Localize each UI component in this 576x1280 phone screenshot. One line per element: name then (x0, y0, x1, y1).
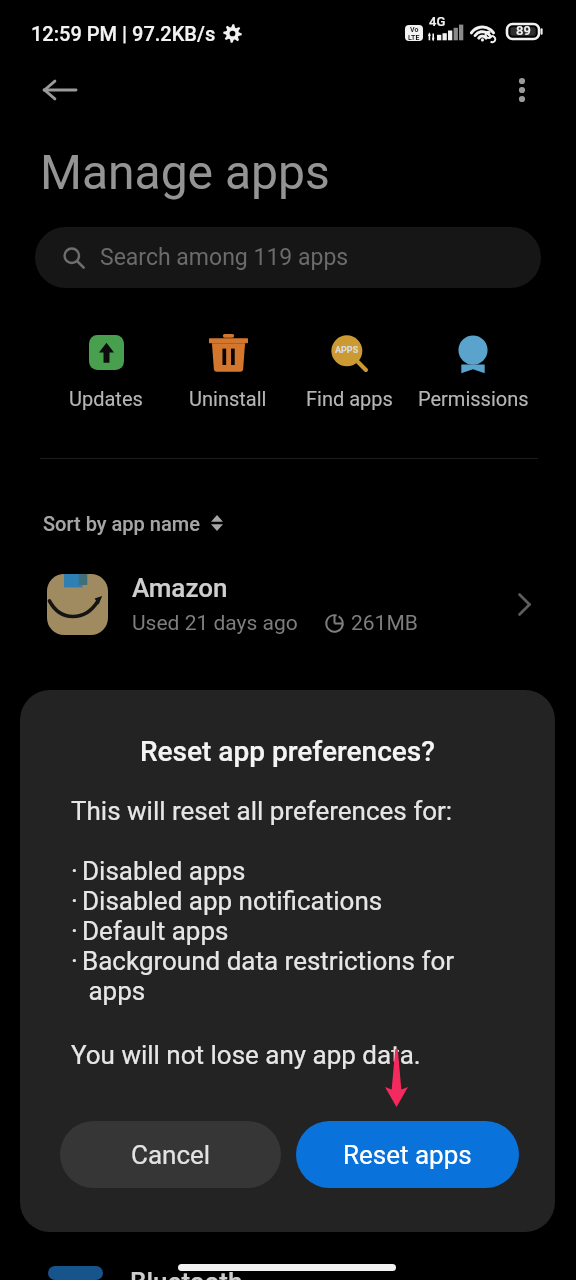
staticText: Sort by app name (43, 512, 200, 535)
staticText: 4G (429, 14, 446, 29)
staticText: Background data restrictions for apps (82, 946, 455, 1006)
staticText: Used 21 days ago (132, 611, 298, 636)
staticText: Reset app preferences? (140, 735, 435, 768)
button[interactable]: Cancel (60, 1121, 281, 1188)
staticText: Updates (69, 387, 143, 410)
button[interactable]: Search (35, 227, 541, 288)
button[interactable]: Amazon (0, 560, 576, 648)
staticText: Disabled app notifications (82, 886, 383, 916)
button[interactable]: Updates (45, 329, 167, 414)
staticText: Amazon (132, 573, 228, 603)
button[interactable]: Sort by app name (0, 498, 576, 548)
staticText: · (71, 916, 78, 946)
button[interactable]: Bluetooth (0, 1266, 576, 1280)
staticText: Reset apps (343, 1140, 472, 1170)
staticText: You will not lose any app data. (71, 1040, 421, 1070)
button[interactable]: More options (498, 66, 546, 114)
staticText: 89 (516, 23, 531, 38)
button[interactable]: Permissions (412, 329, 534, 414)
staticText: LTE (408, 34, 420, 41)
staticText: This will reset all preferences for: (71, 796, 453, 826)
button[interactable]: Uninstall (167, 329, 289, 414)
button[interactable]: Reset apps (296, 1121, 519, 1188)
staticText: Uninstall (189, 387, 267, 410)
staticText: APPS (335, 345, 359, 356)
button[interactable]: Back (33, 63, 87, 117)
staticText: Cancel (131, 1140, 211, 1170)
staticText: Disabled apps (82, 856, 246, 886)
staticText: 261MB (351, 611, 418, 636)
staticText: · (71, 856, 78, 886)
staticText: Default apps (82, 916, 229, 946)
staticText: Find apps (306, 387, 393, 410)
staticText: Permissions (418, 387, 529, 410)
staticText: 12:59 PM | 97.2KB/s (31, 22, 216, 45)
staticText: Search among 119 apps (100, 244, 349, 271)
staticText: · (71, 946, 78, 976)
staticText: Bluetooth (130, 1267, 243, 1280)
staticText: · (71, 886, 78, 916)
staticText: Manage apps (40, 144, 330, 200)
staticText: Vo (410, 26, 419, 34)
button[interactable]: APPS (288, 329, 410, 414)
